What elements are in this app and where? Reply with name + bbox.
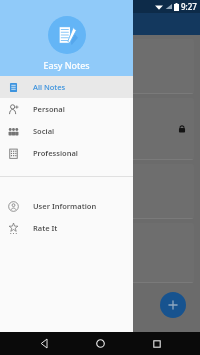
button[interactable]: [6, 223, 194, 283]
button[interactable]: [6, 39, 194, 94]
button[interactable]: Home: [87, 332, 113, 355]
staticText: All Notes: [33, 82, 66, 92]
button[interactable]: Personal: [0, 98, 133, 120]
button[interactable]: [6, 98, 194, 160]
staticText: Social: [33, 126, 55, 136]
button[interactable]: All Notes: [0, 76, 133, 98]
button[interactable]: User Information: [0, 195, 133, 217]
button[interactable]: Add note: [160, 292, 186, 318]
button[interactable]: Professional: [0, 142, 133, 164]
button[interactable]: Recent apps: [144, 332, 170, 355]
staticText: Personal: [33, 104, 65, 114]
staticText: Professional: [33, 148, 78, 158]
staticText: Rate It: [33, 223, 58, 233]
button[interactable]: [6, 164, 194, 219]
button[interactable]: Rate It: [0, 217, 133, 239]
button[interactable]: Back: [31, 332, 57, 355]
staticText: 9:27: [181, 1, 197, 12]
button[interactable]: Social: [0, 120, 133, 142]
staticText: Easy Notes: [43, 59, 90, 71]
staticText: User Information: [33, 201, 97, 211]
